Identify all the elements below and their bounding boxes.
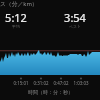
staticText: 0:15:01 bbox=[11, 80, 31, 86]
staticText: 0:31:02 bbox=[31, 80, 51, 86]
staticText: 3:54 bbox=[64, 10, 86, 25]
staticText: ベスト bbox=[69, 24, 81, 29]
staticText: ス（分／km） bbox=[0, 0, 38, 8]
staticText: 1:03:03 bbox=[71, 80, 91, 86]
staticText: 時間（時：分：秒） bbox=[28, 89, 73, 95]
staticText: 平均 bbox=[12, 24, 20, 29]
staticText: 5:12 bbox=[5, 10, 27, 25]
button[interactable]: 5:12 bbox=[0, 10, 36, 30]
staticText: 0:47:02 bbox=[51, 80, 71, 86]
button[interactable]: 3:54 bbox=[55, 10, 95, 30]
